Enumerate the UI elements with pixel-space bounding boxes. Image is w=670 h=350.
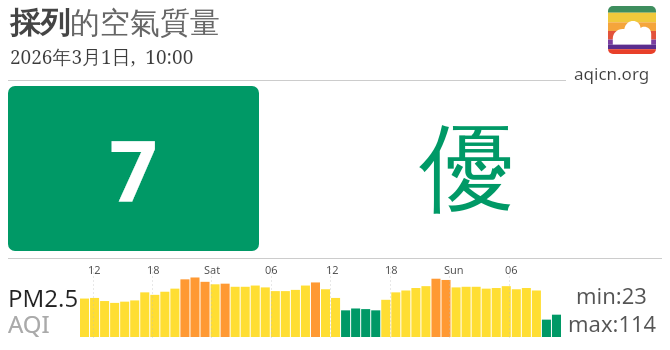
staticText: 2026年3月1日, 10:00 (10, 44, 194, 70)
staticText: 採列 (10, 4, 70, 42)
button[interactable]: aqicn.org logo (608, 6, 656, 54)
staticText: 18 (385, 262, 398, 277)
staticText: Sat (204, 262, 221, 277)
staticText: aqicn.org (574, 62, 650, 85)
staticText: 的空氣質量 (70, 4, 220, 42)
staticText: 12 (326, 262, 339, 277)
staticText: 18 (147, 262, 160, 277)
staticText: max:114 (568, 308, 657, 338)
staticText: Sun (444, 262, 464, 277)
staticText: 7 (109, 112, 158, 226)
staticText: 06 (505, 262, 518, 277)
staticText: 優 (419, 109, 515, 230)
button[interactable]: 優 (412, 104, 522, 234)
staticText: 06 (265, 262, 278, 277)
staticText: min:23 (576, 280, 647, 310)
staticText: PM2.5 (8, 281, 79, 314)
staticText: 12 (88, 262, 101, 277)
button[interactable]: 7 (8, 86, 259, 251)
button[interactable]: PM2.5 AQI forecast chart (80, 275, 562, 337)
staticText: AQI (8, 307, 50, 340)
